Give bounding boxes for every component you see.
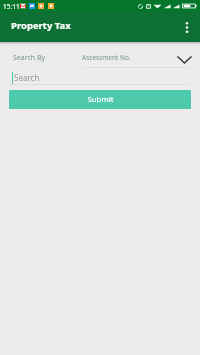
button[interactable]: Assessment No. <box>81 50 191 69</box>
staticText: 15:11 <box>3 2 20 11</box>
staticText: Property Tax <box>11 19 71 32</box>
staticText: Assessment No. <box>82 53 131 62</box>
button[interactable]: Search <box>11 70 191 85</box>
staticText: Search <box>14 72 40 83</box>
button[interactable]: Submit <box>9 90 191 109</box>
staticText: Search By <box>13 53 46 63</box>
staticText: Submit <box>87 94 114 105</box>
button[interactable]: More options <box>176 12 198 42</box>
